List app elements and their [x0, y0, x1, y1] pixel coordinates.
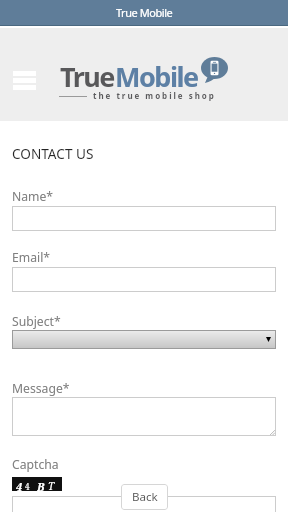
- button[interactable]: Captcha image: [12, 477, 62, 491]
- staticText: 4: [25, 481, 30, 492]
- staticText: True Mobile: [116, 5, 173, 20]
- staticText: Captcha: [12, 456, 59, 473]
- button[interactable]: [12, 397, 276, 436]
- staticText: B: [37, 479, 45, 493]
- button[interactable]: Back: [121, 484, 168, 510]
- button[interactable]: [12, 267, 276, 292]
- staticText: the true mobile shop: [93, 90, 216, 101]
- button[interactable]: Subject: [12, 330, 276, 349]
- staticText: Name*: [12, 188, 54, 205]
- button[interactable]: Menu: [13, 71, 36, 90]
- button[interactable]: [12, 206, 276, 231]
- staticText: Subject*: [12, 313, 61, 330]
- button[interactable]: [12, 496, 276, 512]
- staticText: Email*: [12, 249, 51, 266]
- staticText: Mobile: [115, 58, 198, 95]
- staticText: CONTACT US: [12, 144, 94, 163]
- staticText: True: [60, 58, 114, 95]
- staticText: T: [48, 479, 55, 493]
- staticText: 4: [16, 479, 23, 493]
- staticText: Message*: [12, 380, 70, 397]
- staticText: Back: [132, 489, 158, 505]
